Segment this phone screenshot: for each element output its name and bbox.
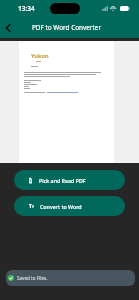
button[interactable]: Convert to Word <box>14 196 125 216</box>
staticText: 13:34 <box>18 4 35 13</box>
staticText: PDF to Word Converter <box>32 23 102 32</box>
staticText: Convert to Word <box>40 203 82 210</box>
button[interactable]: Pick and Read PDF <box>14 170 125 190</box>
staticText: Pick and Read PDF <box>39 177 86 184</box>
staticText: Yukon <box>31 52 49 60</box>
button[interactable]: Back <box>0 20 15 35</box>
button[interactable]: Saved to Files. <box>6 270 135 286</box>
staticText: Saved to Files. <box>17 275 48 281</box>
